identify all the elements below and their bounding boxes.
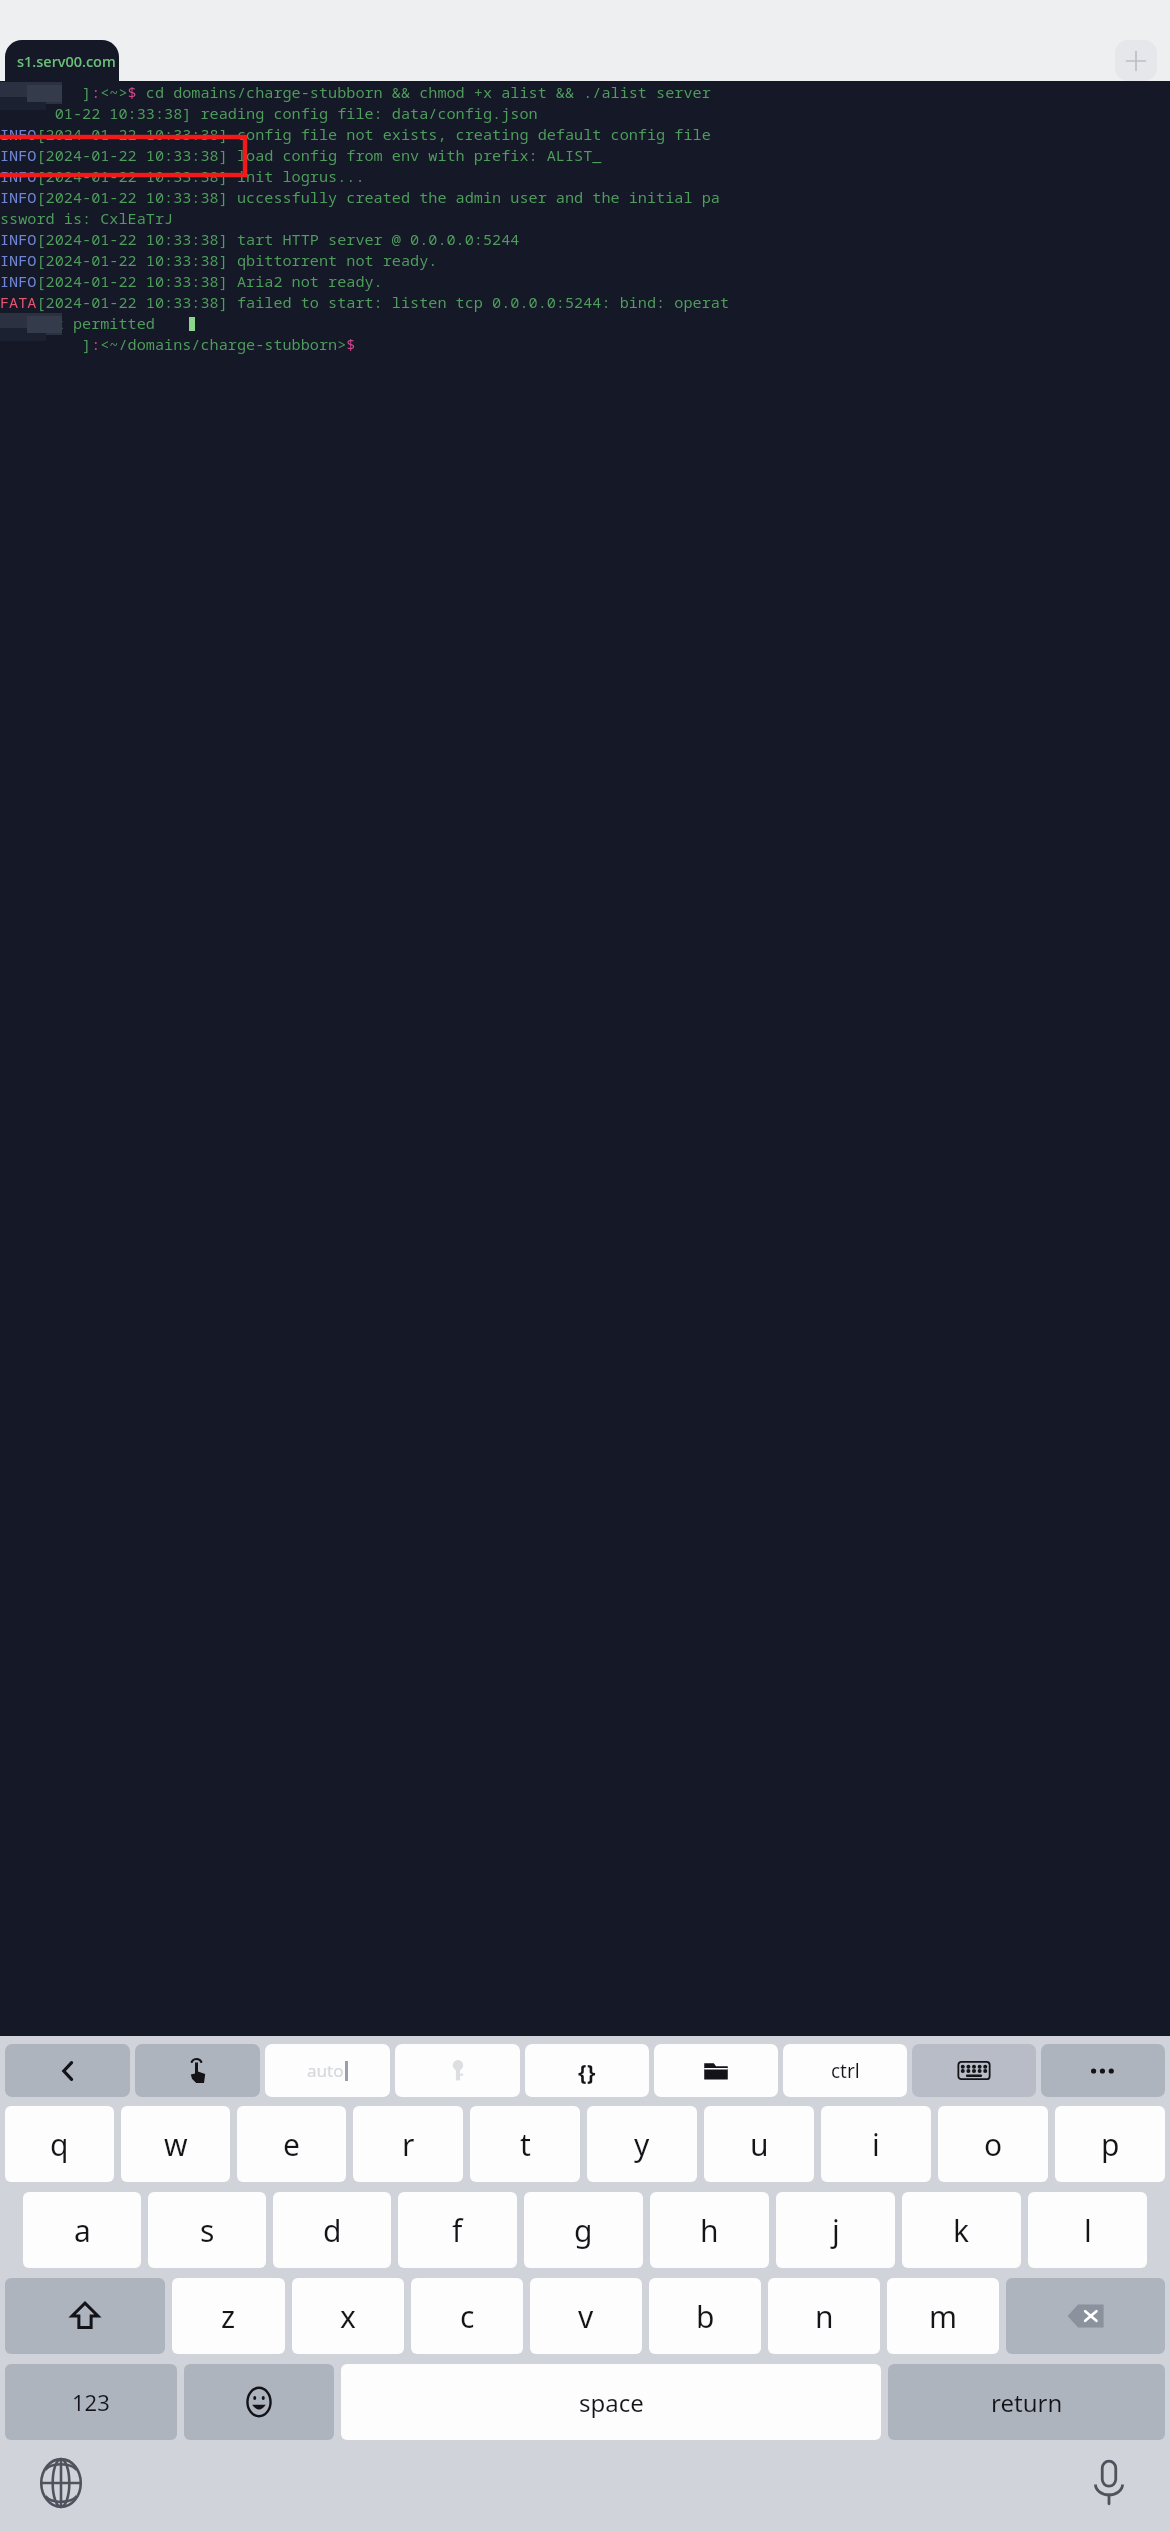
button[interactable]: q — [5, 2106, 114, 2182]
button[interactable]: 123 — [5, 2364, 177, 2440]
staticText: u — [750, 2124, 769, 2165]
staticText: f — [452, 2210, 463, 2251]
button[interactable]: Backspace — [1006, 2278, 1165, 2354]
button[interactable]: z — [172, 2278, 285, 2354]
staticText: b — [696, 2296, 715, 2337]
button[interactable]: Touch mode — [135, 2044, 260, 2097]
staticText: x — [340, 2296, 356, 2337]
button[interactable]: k — [902, 2192, 1021, 2268]
button[interactable]: s — [148, 2192, 266, 2268]
button[interactable]: u — [704, 2106, 814, 2182]
button[interactable]: p — [1055, 2106, 1165, 2182]
staticText: z — [221, 2296, 236, 2337]
button[interactable]: Braces — [525, 2044, 649, 2097]
button[interactable]: i — [821, 2106, 931, 2182]
button[interactable]: s1.serv00.com — [5, 40, 119, 81]
staticText: return — [991, 2386, 1063, 2419]
staticText: k — [953, 2210, 970, 2251]
staticText: m — [929, 2296, 958, 2337]
staticText: v — [578, 2296, 594, 2337]
staticText: g — [574, 2210, 593, 2251]
button[interactable]: r — [353, 2106, 463, 2182]
button[interactable]: v — [530, 2278, 642, 2354]
staticText: h — [700, 2210, 719, 2251]
staticText: INFO[2024-01-22 10:33:38] Aria2 not read… — [0, 271, 383, 292]
staticText: c — [460, 2296, 475, 2337]
staticText: y — [634, 2124, 650, 2165]
staticText: a — [74, 2210, 91, 2251]
staticText: FATA[2024-01-22 10:33:38] failed to star… — [0, 292, 729, 313]
staticText: d — [323, 2210, 342, 2251]
button[interactable]: f — [398, 2192, 517, 2268]
staticText: ot permitted — [0, 313, 155, 334]
staticText: n — [815, 2296, 834, 2337]
button[interactable]: Shift — [5, 2278, 165, 2354]
staticText: {} — [578, 2056, 596, 2086]
staticText: ctrl — [831, 2058, 860, 2084]
staticText: space — [579, 2386, 644, 2419]
button[interactable]: m — [887, 2278, 999, 2354]
button[interactable]: Files — [654, 2044, 778, 2097]
staticText: q — [50, 2124, 69, 2165]
staticText: INFO[2024-01-22 10:33:38] uccessfully cr… — [0, 187, 720, 208]
button[interactable]: Escape — [5, 2044, 130, 2097]
staticText: j — [832, 2210, 840, 2251]
staticText: o — [984, 2124, 1003, 2165]
button[interactable]: l — [1028, 2192, 1147, 2268]
staticText: t — [520, 2124, 531, 2165]
staticText: INFO[2024-01-22 10:33:38] tart HTTP serv… — [0, 229, 520, 250]
staticText: r — [402, 2124, 415, 2165]
staticText: 123 — [72, 2387, 110, 2417]
staticText: INFO[2024-01-22 10:33:38] load config fr… — [0, 145, 602, 166]
button[interactable]: n — [768, 2278, 880, 2354]
button[interactable]: Key — [395, 2044, 520, 2097]
button[interactable]: a — [23, 2192, 141, 2268]
button[interactable]: More — [1041, 2044, 1165, 2097]
staticText: p — [1101, 2124, 1120, 2165]
staticText: s — [200, 2210, 215, 2251]
button[interactable]: Control — [783, 2044, 907, 2097]
button[interactable]: w — [121, 2106, 230, 2182]
staticText: i — [872, 2124, 880, 2165]
staticText: INFO[2024-01-22 10:33:38] config file no… — [0, 124, 711, 145]
staticText: ssword is: CxlEaTrJ — [0, 208, 174, 229]
button[interactable]: d — [273, 2192, 391, 2268]
staticText: ]:<~>$ cd domains/charge-stubborn && chm… — [0, 82, 711, 103]
button[interactable]: g — [524, 2192, 643, 2268]
button[interactable]: c — [411, 2278, 523, 2354]
staticText: INFO[2024-01-22 10:33:38] qbittorrent no… — [0, 250, 438, 271]
button[interactable]: e — [237, 2106, 346, 2182]
button[interactable]: Change language — [30, 2452, 92, 2514]
staticText: auto — [307, 2059, 344, 2082]
button[interactable]: return — [888, 2364, 1165, 2440]
button[interactable]: Emoji — [184, 2364, 334, 2440]
button[interactable]: h — [650, 2192, 769, 2268]
staticText: INFO[2024-01-22 10:33:38] init logrus... — [0, 166, 365, 187]
button[interactable]: o — [938, 2106, 1048, 2182]
button[interactable]: Autocomplete — [265, 2044, 390, 2097]
button[interactable]: j — [776, 2192, 895, 2268]
button[interactable]: New tab — [1115, 40, 1157, 81]
staticText: s1.serv00.com — [17, 51, 116, 71]
button[interactable]: x — [292, 2278, 404, 2354]
staticText: l — [1084, 2210, 1092, 2251]
button[interactable]: Dictation — [1078, 2452, 1140, 2514]
button[interactable]: Keyboard — [912, 2044, 1036, 2097]
button[interactable]: y — [587, 2106, 697, 2182]
staticText: ]:<~/domains/charge-stubborn>$ — [0, 334, 356, 355]
staticText: 01-22 10:33:38] reading config file: dat… — [0, 103, 538, 124]
staticText: w — [164, 2124, 188, 2165]
button[interactable]: t — [470, 2106, 580, 2182]
button[interactable]: space — [341, 2364, 881, 2440]
button[interactable]: b — [649, 2278, 761, 2354]
staticText: e — [283, 2124, 300, 2165]
